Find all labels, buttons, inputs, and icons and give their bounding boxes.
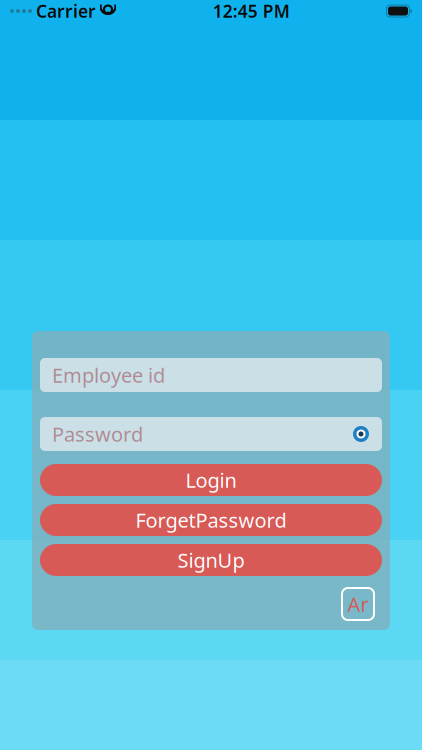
button[interactable]: Ar xyxy=(342,588,374,620)
button[interactable]: Show password xyxy=(348,421,374,447)
staticText: Login xyxy=(185,467,236,493)
staticText: Password xyxy=(52,421,143,447)
staticText: ForgetPassword xyxy=(135,507,286,533)
staticText: Ar xyxy=(347,591,368,617)
button[interactable]: SignUp xyxy=(40,544,382,576)
button[interactable]: Login xyxy=(40,464,382,496)
staticText: Carrier xyxy=(36,0,96,22)
staticText: 12:45 PM xyxy=(213,0,290,22)
staticText: Employee id xyxy=(52,362,165,388)
button[interactable]: ForgetPassword xyxy=(40,504,382,536)
staticText: SignUp xyxy=(177,547,244,573)
